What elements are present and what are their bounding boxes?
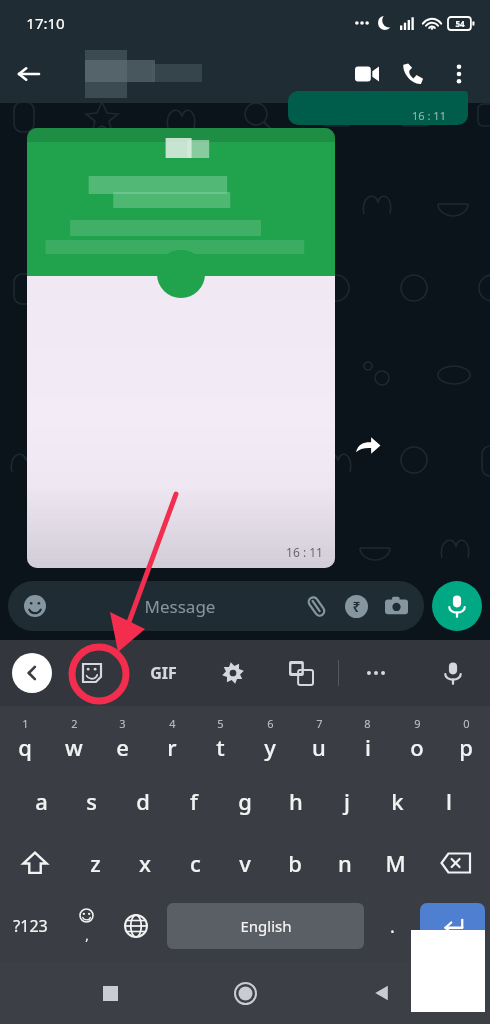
button[interactable]: Voice message [432, 581, 482, 631]
button[interactable]: More options [436, 51, 482, 97]
button[interactable]: Enter [420, 903, 485, 949]
staticText: 5 [217, 716, 224, 731]
button[interactable]: 7 [294, 708, 343, 770]
staticText: English [240, 916, 292, 936]
button[interactable]: Emoji and comma [61, 894, 111, 958]
button[interactable]: a [16, 770, 66, 832]
button[interactable]: 5 [196, 708, 245, 770]
button[interactable]: d [117, 770, 168, 832]
button[interactable]: k [372, 770, 423, 832]
button[interactable]: Stickers [70, 651, 114, 695]
button[interactable]: Emoji [18, 589, 52, 623]
button[interactable]: Forward [350, 428, 386, 464]
staticText: 0 [463, 716, 470, 731]
button[interactable]: b [270, 832, 320, 894]
button[interactable]: z [70, 832, 120, 894]
button[interactable]: 0 [441, 708, 490, 770]
staticText: 1 [22, 716, 29, 731]
button[interactable]: ?123 [0, 894, 61, 958]
staticText: Message [64, 595, 296, 618]
button[interactable]: 9 [392, 708, 441, 770]
staticText: v [239, 848, 251, 878]
button[interactable]: Emoji [8, 581, 424, 631]
staticText: f [190, 786, 198, 816]
button[interactable]: 2 [49, 708, 98, 770]
staticText: c [190, 848, 201, 878]
button[interactable]: 8 [343, 708, 392, 770]
staticText: u [312, 732, 326, 762]
button[interactable]: More [353, 650, 399, 696]
staticText: . [390, 914, 395, 939]
staticText: 4 [169, 716, 176, 731]
button[interactable]: English [167, 903, 364, 949]
button[interactable]: M [370, 832, 420, 894]
staticText: 54 [455, 18, 465, 29]
staticText: y [264, 732, 276, 762]
staticText: 16 : 11 [412, 108, 446, 123]
staticText: ?123 [13, 915, 48, 937]
staticText: ₹ [352, 597, 361, 616]
staticText: i [365, 732, 371, 762]
button[interactable]: . [370, 894, 415, 958]
staticText: b [288, 848, 302, 878]
button[interactable]: n [320, 832, 370, 894]
button[interactable]: x [120, 832, 170, 894]
button[interactable]: g [219, 770, 270, 832]
button[interactable]: Home [219, 967, 271, 1019]
button[interactable]: l [423, 770, 474, 832]
staticText: x [139, 848, 151, 878]
button[interactable]: h [270, 770, 321, 832]
button[interactable] [52, 50, 344, 98]
staticText: 2 [71, 716, 78, 731]
button[interactable]: Close toolbar [12, 653, 52, 693]
button[interactable]: Attach [296, 586, 336, 626]
staticText: n [338, 848, 352, 878]
staticText: 9 [414, 716, 421, 731]
staticText: r [167, 732, 177, 762]
staticText: d [136, 786, 150, 816]
button[interactable]: Video call [344, 51, 390, 97]
button[interactable]: Translate [278, 650, 324, 696]
button[interactable]: Backspace [420, 832, 490, 894]
staticText: M [385, 848, 406, 878]
button[interactable]: Settings [210, 650, 256, 696]
staticText: 7 [316, 716, 323, 731]
staticText: 17:10 [26, 13, 65, 33]
staticText: k [391, 786, 404, 816]
staticText: w [65, 732, 83, 762]
button[interactable]: v [220, 832, 270, 894]
staticText: o [410, 732, 424, 762]
button[interactable]: 6 [245, 708, 294, 770]
button[interactable]: Voice input [430, 650, 476, 696]
button[interactable]: Camera [376, 586, 416, 626]
staticText: GIF [150, 662, 177, 684]
button[interactable]: j [321, 770, 372, 832]
staticText: h [289, 786, 303, 816]
button[interactable]: s [66, 770, 117, 832]
staticText: s [86, 786, 97, 816]
button[interactable]: 1 [0, 708, 49, 770]
button[interactable]: Voice call [390, 51, 436, 97]
button[interactable]: 4 [147, 708, 196, 770]
button[interactable]: Back [6, 52, 50, 96]
staticText: p [459, 732, 473, 762]
button[interactable]: 16 : 11 [288, 91, 468, 125]
staticText: e [116, 732, 129, 762]
staticText: a [35, 786, 48, 816]
button[interactable]: c [170, 832, 220, 894]
button[interactable]: Change language [111, 894, 161, 958]
button[interactable]: Shift [0, 832, 70, 894]
button[interactable]: Payment [336, 586, 376, 626]
staticText: 6 [267, 716, 274, 731]
staticText: g [238, 786, 252, 816]
button[interactable]: Recents [84, 967, 136, 1019]
button[interactable]: Back [355, 967, 407, 1019]
staticText: , [85, 926, 89, 944]
staticText: 3 [119, 716, 126, 731]
button[interactable]: f [168, 770, 219, 832]
staticText: 8 [364, 716, 371, 731]
button[interactable]: GIF [140, 650, 186, 696]
staticText: t [216, 732, 225, 762]
button[interactable]: 3 [98, 708, 147, 770]
button[interactable]: 16 : 11 [27, 128, 335, 568]
